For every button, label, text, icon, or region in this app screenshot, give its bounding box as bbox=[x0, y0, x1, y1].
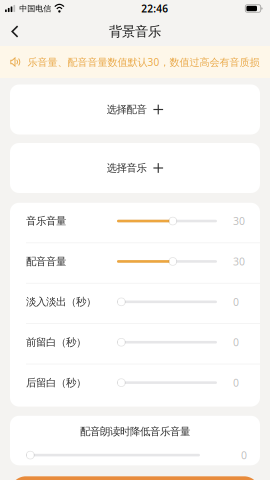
button[interactable]: 返回 bbox=[0, 17, 36, 46]
staticText: 淡入淡出（秒） bbox=[26, 295, 96, 308]
staticText: 选择音乐 bbox=[106, 161, 146, 175]
staticText: 0 bbox=[233, 335, 239, 349]
staticText: 前留白（秒） bbox=[26, 336, 86, 349]
staticText: 后留白（秒） bbox=[26, 376, 86, 389]
button[interactable]: 确 认 bbox=[10, 476, 260, 480]
staticText: 30 bbox=[233, 254, 245, 269]
staticText: 背景音乐 bbox=[109, 23, 161, 40]
button[interactable]: 选择音乐 bbox=[10, 143, 260, 193]
staticText: 配音朗读时降低音乐音量 bbox=[80, 425, 190, 438]
staticText: 配音音量 bbox=[26, 255, 66, 268]
staticText: 音乐音量 bbox=[26, 214, 66, 228]
staticText: 0 bbox=[241, 448, 247, 462]
staticText: 0 bbox=[233, 375, 239, 390]
button[interactable]: 选择配音 bbox=[10, 84, 260, 134]
staticText: 选择配音 bbox=[106, 103, 146, 116]
staticText: 22:46 bbox=[141, 2, 168, 15]
staticText: 0 bbox=[233, 295, 239, 309]
staticText: 中国电信 bbox=[19, 3, 51, 14]
staticText: 30 bbox=[233, 214, 245, 228]
staticText: 乐音量、配音音量数值默认30，数值过高会有音质损 bbox=[28, 55, 260, 69]
